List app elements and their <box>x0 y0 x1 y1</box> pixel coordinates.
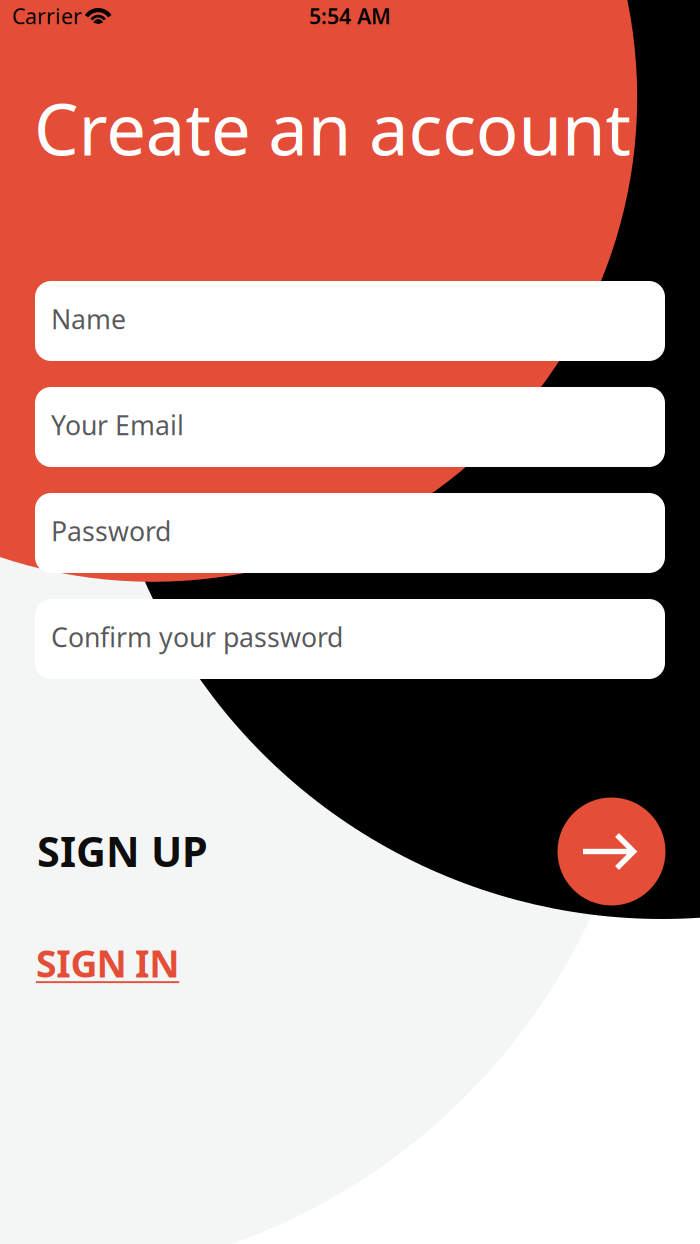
button[interactable]: Confirm your password <box>35 599 665 679</box>
staticText: SIGN IN <box>36 938 179 988</box>
staticText: Confirm your password <box>51 619 343 655</box>
staticText: Carrier <box>12 2 82 30</box>
staticText: Name <box>51 301 126 337</box>
button[interactable]: Your Email <box>35 387 665 467</box>
staticText: 5:54 AM <box>309 2 391 30</box>
staticText: SIGN UP <box>37 824 208 878</box>
staticText: Create an account <box>34 81 632 175</box>
staticText: Your Email <box>51 407 184 443</box>
button[interactable]: Continue <box>557 797 665 905</box>
button[interactable]: Password <box>35 493 665 573</box>
button[interactable]: SIGN UP <box>37 824 277 878</box>
button[interactable]: SIGN IN <box>36 937 256 989</box>
button[interactable]: Name <box>35 281 665 361</box>
staticText: Password <box>51 513 171 549</box>
